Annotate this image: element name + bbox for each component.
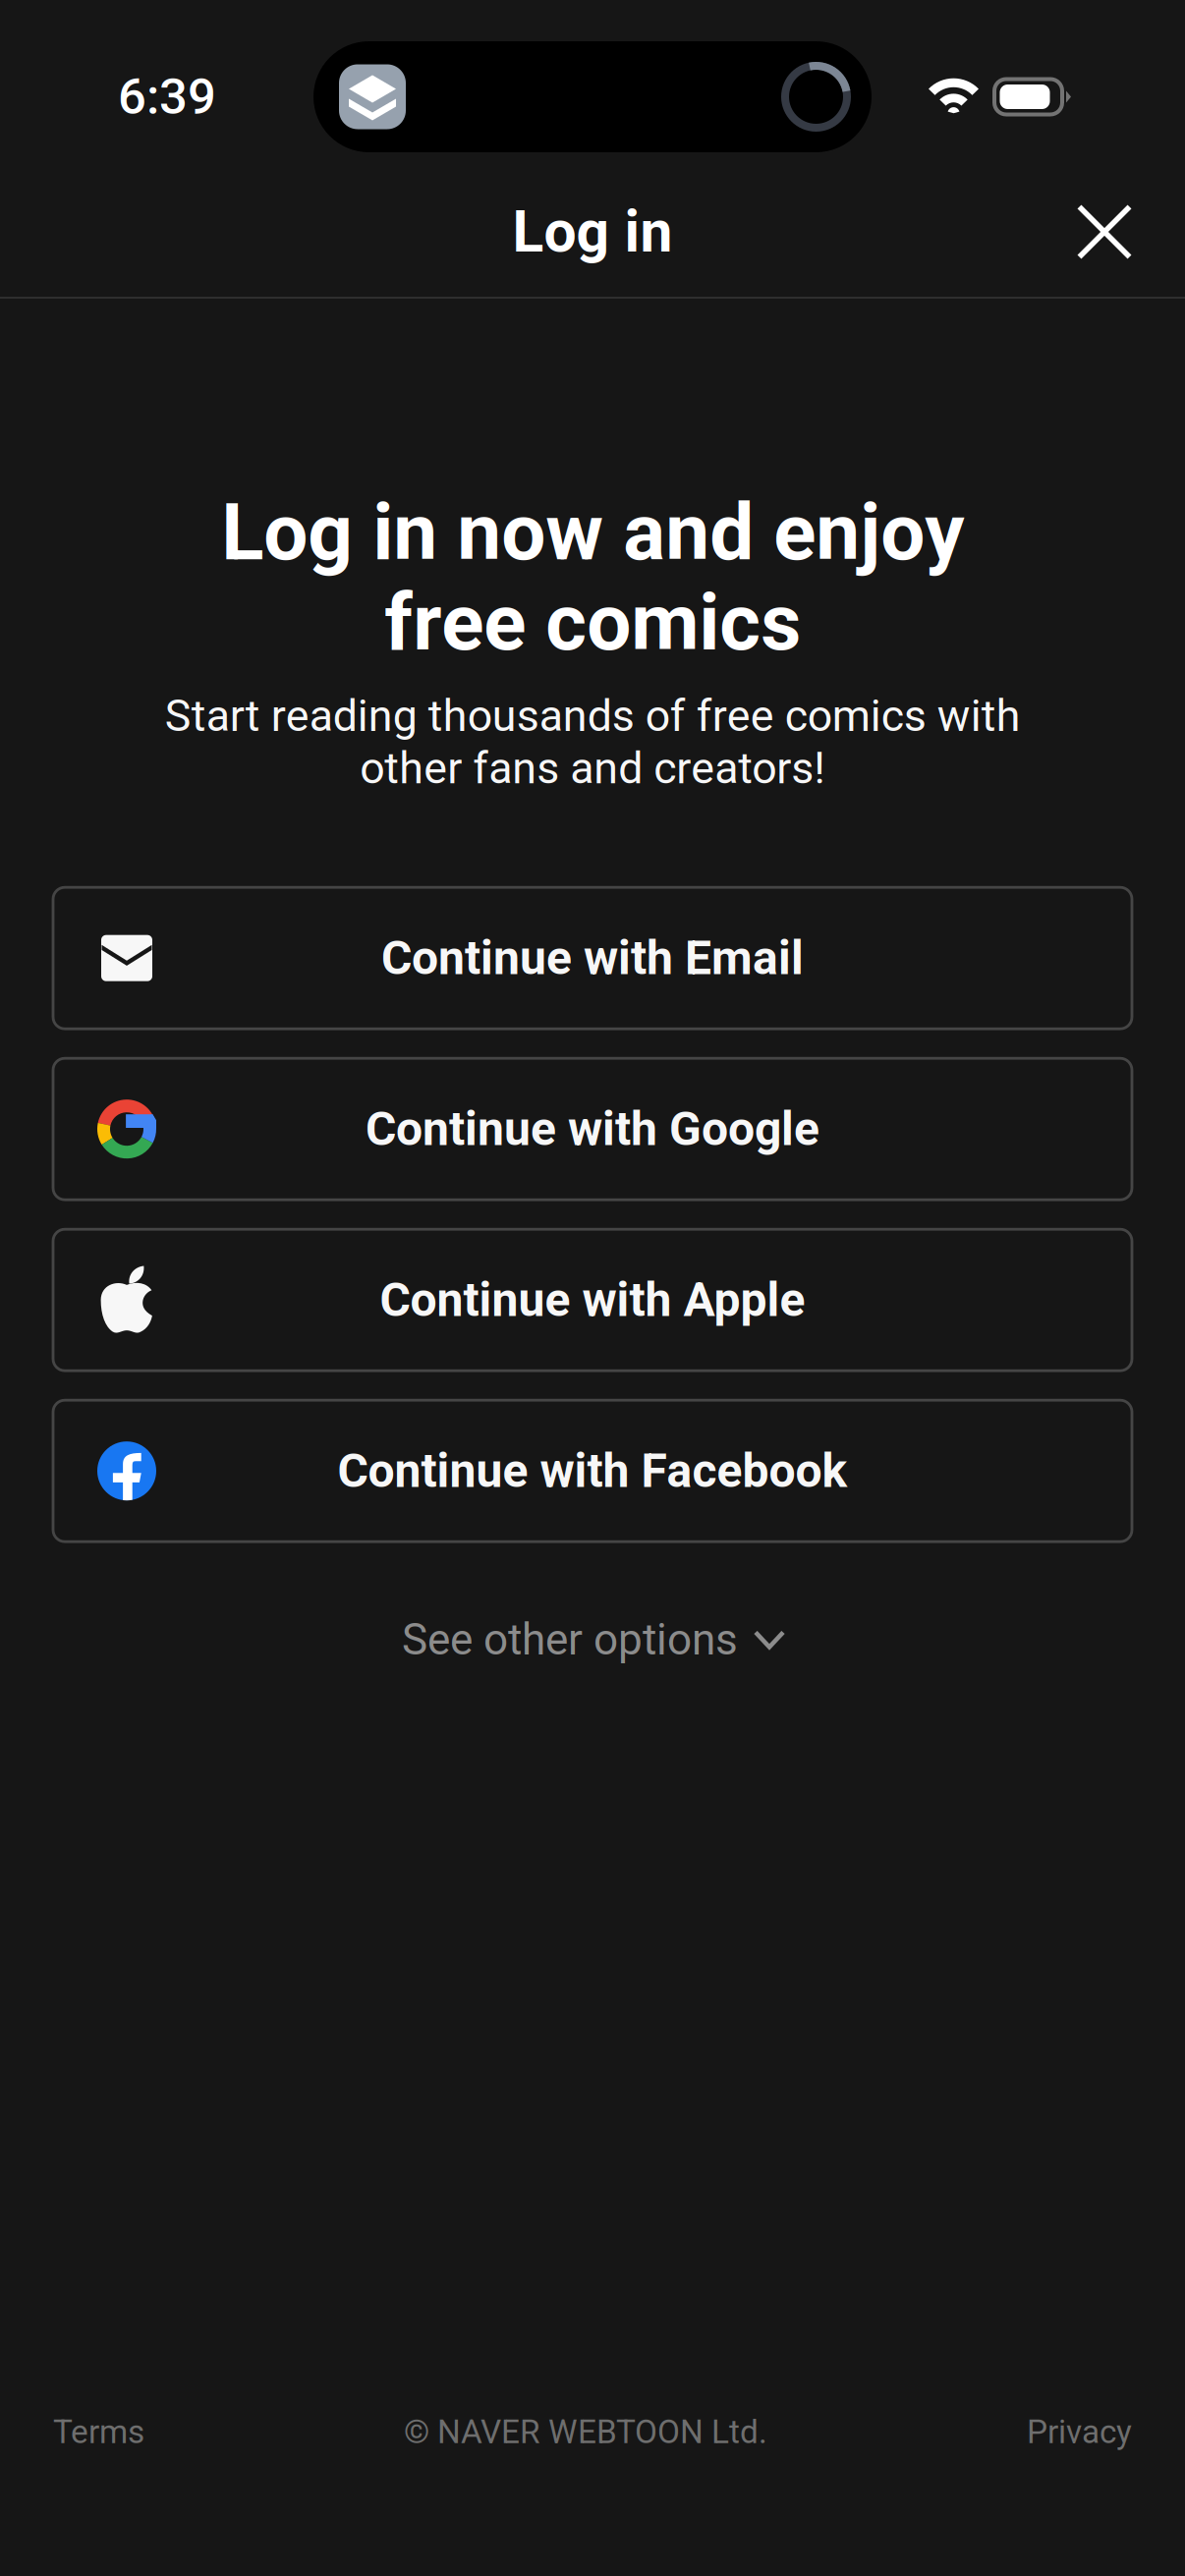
staticText: Terms: [53, 2413, 144, 2451]
button[interactable]: Continue with Apple: [53, 1229, 1132, 1371]
button[interactable]: Terms: [53, 2413, 144, 2451]
staticText: See other options: [402, 1614, 738, 1665]
staticText: Continue with Email: [381, 930, 804, 986]
staticText: © NAVER WEBTOON Ltd.: [404, 2413, 767, 2451]
button[interactable]: Close: [1049, 177, 1159, 287]
button[interactable]: Continue with Google: [53, 1058, 1132, 1200]
staticText: Start reading thousands of free comics w…: [165, 690, 1020, 794]
staticText: Log in now and enjoy free comics: [221, 486, 964, 669]
staticText: Continue with Google: [366, 1101, 819, 1157]
button[interactable]: Continue with Email: [53, 887, 1132, 1029]
staticText: Continue with Facebook: [338, 1443, 847, 1499]
staticText: Continue with Apple: [380, 1272, 805, 1328]
staticText: Privacy: [1027, 2413, 1132, 2451]
staticText: Log in: [512, 198, 673, 266]
staticText: 6:39: [118, 68, 216, 126]
button[interactable]: Privacy: [1027, 2413, 1132, 2451]
button[interactable]: See other options: [378, 1601, 807, 1679]
button[interactable]: Continue with Facebook: [53, 1400, 1132, 1542]
